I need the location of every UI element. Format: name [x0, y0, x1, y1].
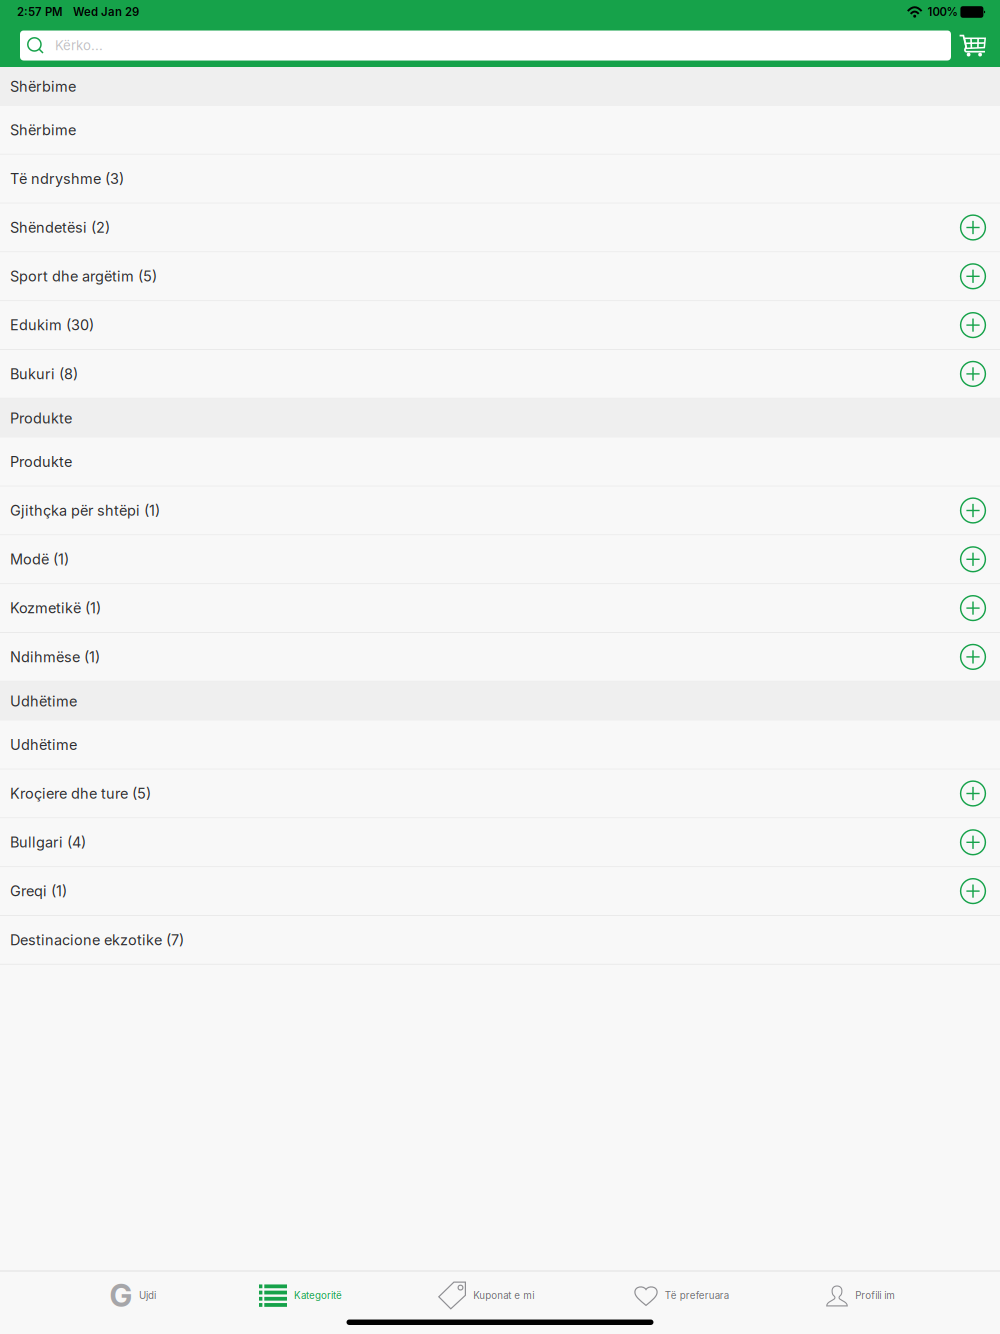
staticText: Produkte: [10, 453, 72, 470]
staticText: Kroçiere dhe ture (5): [10, 785, 151, 802]
staticText: Greqi (1): [10, 882, 67, 900]
button[interactable]: Të preferuara: [634, 1273, 729, 1317]
button[interactable]: Edukim (30): [0, 301, 1000, 350]
button[interactable]: Kategoritë: [259, 1273, 342, 1317]
staticText: Destinacione ekzotike (7): [10, 931, 184, 949]
button[interactable]: Kozmetikë (1): [0, 584, 1000, 633]
staticText: Ujdi: [139, 1290, 156, 1301]
staticText: Shërbime: [10, 78, 76, 95]
staticText: Kategoritë: [294, 1290, 342, 1301]
button[interactable]: Greqi (1): [0, 867, 1000, 916]
staticText: Udhëtime: [10, 692, 77, 710]
staticText: Shërbime: [10, 121, 76, 139]
staticText: Të ndryshme (3): [10, 170, 124, 187]
button[interactable]: Gjithçka për shtëpi (1): [0, 487, 1000, 535]
staticText: 100%: [927, 5, 957, 19]
staticText: Kërko...: [55, 37, 103, 53]
staticText: Wed Jan 29: [73, 5, 139, 19]
staticText: Kozmetikë (1): [10, 599, 101, 617]
staticText: Bullgari (4): [10, 833, 86, 851]
staticText: Sport dhe argëtim (5): [10, 267, 157, 285]
staticText: 2:57 PM: [17, 5, 62, 19]
button[interactable]: Profili im: [826, 1273, 895, 1317]
button[interactable]: Modë (1): [0, 535, 1000, 584]
button[interactable]: Sport dhe argëtim (5): [0, 252, 1000, 301]
button[interactable]: Produkte: [0, 438, 1000, 487]
staticText: Gjithçka për shtëpi (1): [10, 502, 160, 519]
staticText: Shëndetësi (2): [10, 219, 110, 236]
button[interactable]: Shopping cart: [951, 34, 1000, 57]
button[interactable]: Shërbime: [0, 106, 1000, 155]
staticText: Ndihmëse (1): [10, 648, 100, 666]
button[interactable]: Ndihmëse (1): [0, 633, 1000, 682]
staticText: Produkte: [10, 409, 72, 427]
button[interactable]: Të ndryshme (3): [0, 155, 1000, 204]
staticText: Bukuri (8): [10, 365, 78, 383]
button[interactable]: Destinacione ekzotike (7): [0, 916, 1000, 965]
button[interactable]: Kroçiere dhe ture (5): [0, 770, 1000, 818]
staticText: G: [109, 1277, 132, 1314]
staticText: Profili im: [855, 1290, 895, 1301]
staticText: Të preferuara: [665, 1290, 729, 1301]
staticText: Udhëtime: [10, 736, 77, 753]
button[interactable]: G: [110, 1273, 156, 1317]
staticText: Edukim (30): [10, 316, 94, 334]
button[interactable]: Kuponat e mi: [438, 1273, 534, 1317]
button[interactable]: Shëndetësi (2): [0, 204, 1000, 252]
staticText: Kuponat e mi: [473, 1290, 534, 1301]
staticText: Modë (1): [10, 550, 69, 568]
button[interactable]: Bullgari (4): [0, 818, 1000, 867]
button[interactable]: Udhëtime: [0, 721, 1000, 770]
button[interactable]: Bukuri (8): [0, 350, 1000, 399]
